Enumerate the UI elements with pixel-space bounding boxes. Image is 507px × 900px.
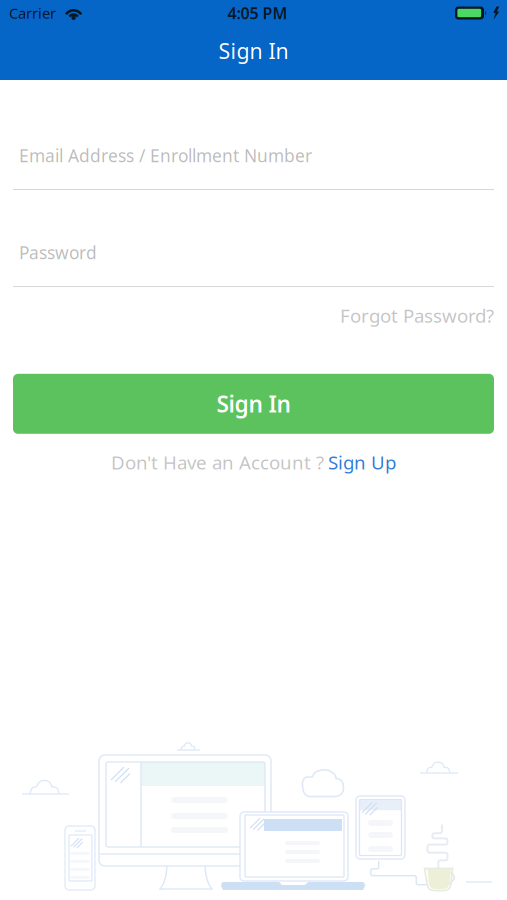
- button[interactable]: Sign In: [13, 374, 494, 434]
- staticText: Forgot Password?: [340, 303, 494, 328]
- button[interactable]: Sign Up: [328, 450, 396, 475]
- staticText: Carrier: [9, 3, 56, 23]
- staticText: Sign In: [216, 389, 290, 419]
- button[interactable]: Forgot Password?: [13, 303, 494, 328]
- staticText: Email Address / Enrollment Number: [19, 144, 312, 167]
- staticText: Sign In: [218, 37, 288, 65]
- staticText: 4:05 PM: [227, 2, 287, 24]
- staticText: Password: [19, 241, 97, 264]
- staticText: Don't Have an Account ?: [111, 450, 324, 475]
- staticText: Sign Up: [328, 450, 396, 475]
